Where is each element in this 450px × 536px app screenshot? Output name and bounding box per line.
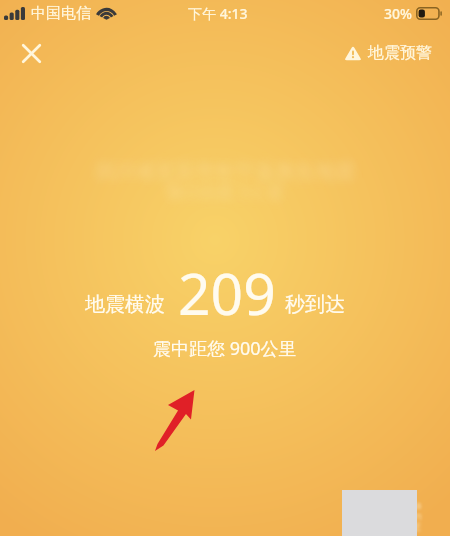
staticText: 中国电信 xyxy=(31,4,91,23)
staticText: 地震横波 xyxy=(85,292,165,317)
button[interactable]: 地震预警 xyxy=(344,43,432,63)
staticText: 30% xyxy=(384,4,412,23)
staticText: 秒到达 xyxy=(285,292,345,317)
staticText: 四川省宜宾市长宁县发生地震 xyxy=(95,159,355,184)
staticText: 下午 4:13 xyxy=(188,4,248,23)
staticText: 209 xyxy=(178,254,276,332)
staticText: a n E xyxy=(415,497,422,534)
button[interactable]: Close xyxy=(13,35,49,71)
staticText: 地震预警 xyxy=(368,43,432,63)
staticText: 震中距您 900公里 xyxy=(153,336,297,361)
